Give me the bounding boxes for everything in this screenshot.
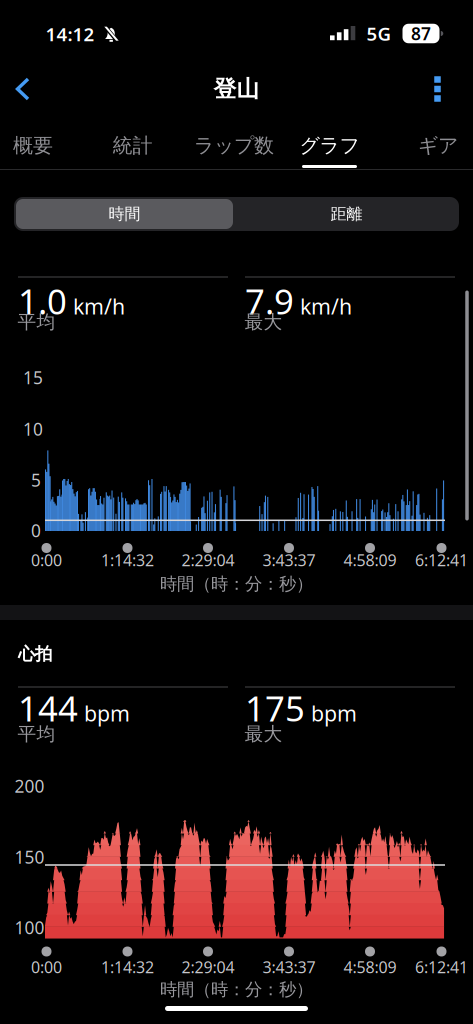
staticText: 時間（時：分：秒） <box>160 979 313 1000</box>
staticText: 10 <box>23 417 43 440</box>
staticText: 1:14:32 <box>101 549 154 571</box>
staticText: 4:58:09 <box>343 549 396 571</box>
staticText: 1.0 <box>18 278 67 324</box>
button[interactable]: ギア <box>418 133 458 158</box>
staticText: グラフ <box>299 133 359 158</box>
staticText: km/h <box>73 292 125 320</box>
staticText: 統計 <box>112 133 152 158</box>
staticText: 概要 <box>13 133 53 158</box>
staticText: 0:00 <box>31 549 62 571</box>
staticText: 0 <box>31 519 41 542</box>
staticText: 3:43:37 <box>262 549 315 571</box>
staticText: 2:29:04 <box>181 549 234 571</box>
staticText: 心拍 <box>18 643 52 665</box>
button[interactable]: 距離 <box>238 199 455 229</box>
staticText: 5G <box>366 21 391 46</box>
staticText: 6:12:41 <box>415 956 468 978</box>
staticText: 登山 <box>213 75 259 103</box>
staticText: 最大 <box>244 722 282 745</box>
staticText: bpm <box>84 699 130 727</box>
button[interactable]: 統計 <box>112 133 152 158</box>
staticText: 87 <box>411 22 431 45</box>
staticText: 150 <box>14 845 44 868</box>
staticText: 7.9 <box>245 278 294 324</box>
staticText: 最大 <box>244 310 282 333</box>
staticText: 200 <box>14 774 44 797</box>
staticText: 時間 <box>108 204 140 224</box>
staticText: 1:14:32 <box>101 956 154 978</box>
staticText: 15 <box>23 366 43 389</box>
button[interactable]: ラップ数 <box>194 133 274 158</box>
staticText: 144 <box>18 685 78 731</box>
staticText: 14:12 <box>45 22 94 46</box>
staticText: 0:00 <box>31 956 62 978</box>
staticText: 4:58:09 <box>343 956 396 978</box>
staticText: 5 <box>31 468 41 491</box>
staticText: 時間（時：分：秒） <box>160 573 313 595</box>
button[interactable]: Back <box>14 77 31 101</box>
staticText: 175 <box>245 685 305 731</box>
staticText: 6:12:41 <box>415 549 468 571</box>
staticText: 100 <box>14 916 44 939</box>
staticText: ラップ数 <box>194 133 274 158</box>
staticText: 3:43:37 <box>262 956 315 978</box>
button[interactable]: More options <box>434 76 441 102</box>
staticText: ギア <box>418 133 458 158</box>
staticText: km/h <box>300 292 352 320</box>
button[interactable]: 概要 <box>13 133 53 158</box>
button[interactable]: グラフ <box>299 133 359 158</box>
staticText: bpm <box>311 699 357 727</box>
staticText: 平均 <box>17 310 55 333</box>
button[interactable]: 時間 <box>16 199 233 229</box>
staticText: 平均 <box>17 722 55 745</box>
staticText: 距離 <box>330 204 362 224</box>
staticText: 2:29:04 <box>181 956 234 978</box>
